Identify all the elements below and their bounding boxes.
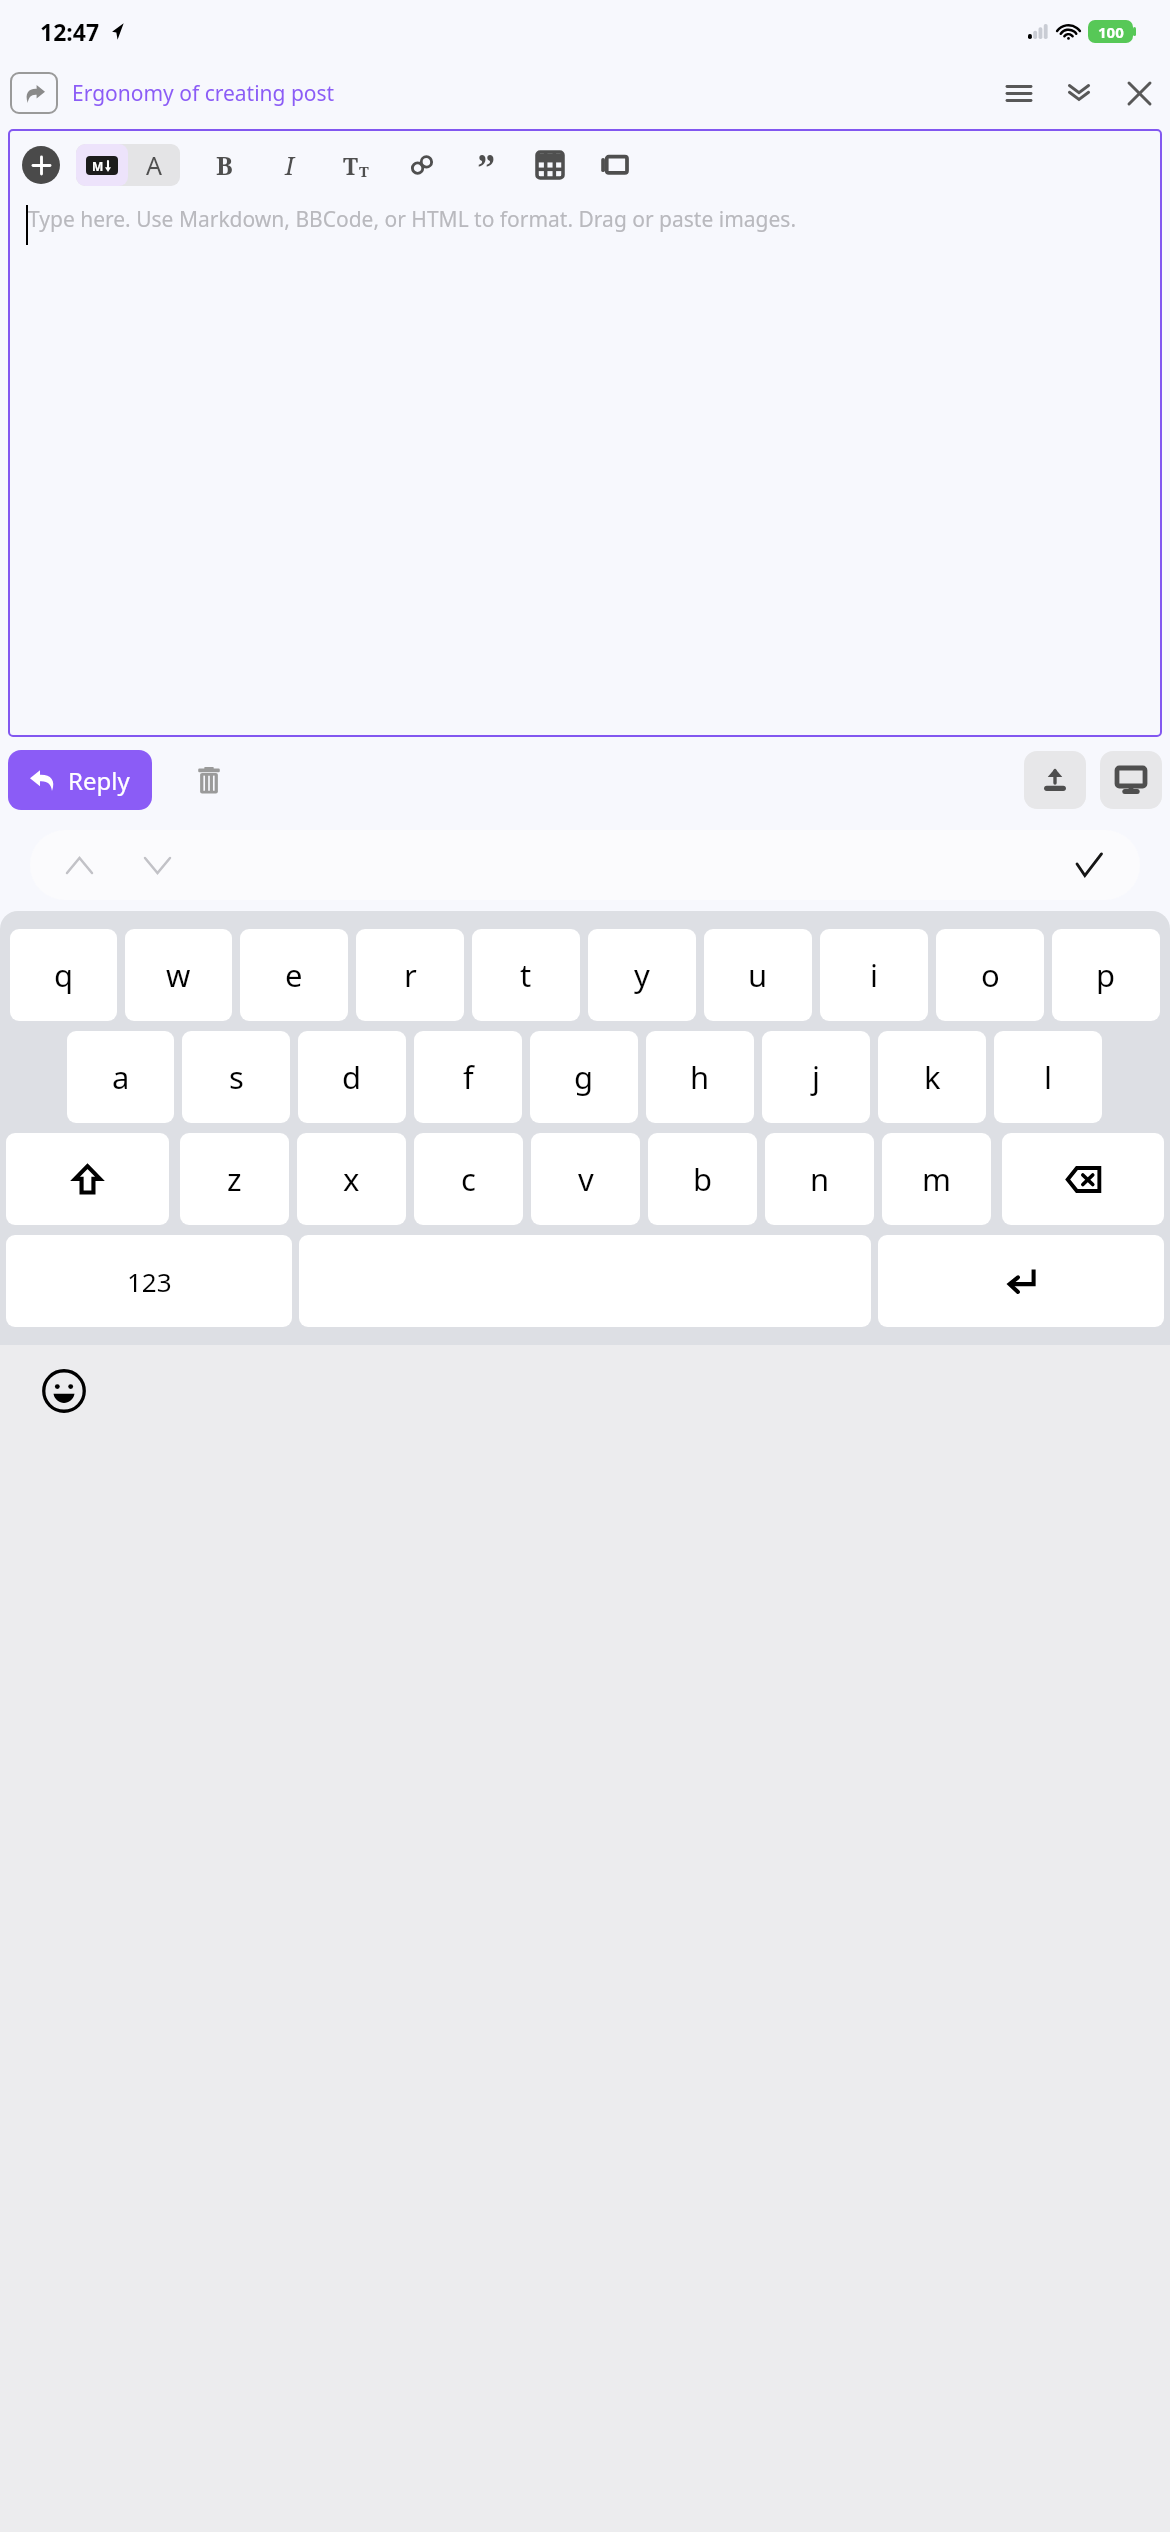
staticText: x bbox=[343, 1158, 360, 1200]
button[interactable]: Rich text bbox=[128, 144, 180, 186]
button[interactable]: j bbox=[762, 1031, 870, 1123]
button[interactable]: Return bbox=[878, 1235, 1164, 1327]
staticText: k bbox=[924, 1056, 941, 1098]
staticText: j bbox=[812, 1056, 820, 1098]
button[interactable]: Quote bbox=[466, 141, 506, 189]
staticText: 12:47 bbox=[40, 16, 100, 47]
staticText: u bbox=[748, 954, 768, 996]
staticText: d bbox=[342, 1056, 362, 1098]
button[interactable]: Collapse bbox=[1058, 72, 1100, 114]
button[interactable]: s bbox=[182, 1031, 290, 1123]
button[interactable]: a bbox=[67, 1031, 174, 1123]
button[interactable]: Close bbox=[1118, 72, 1160, 114]
staticText: o bbox=[981, 954, 1000, 996]
button[interactable]: Font size bbox=[336, 141, 376, 189]
staticText: v bbox=[578, 1158, 594, 1200]
button[interactable]: Add bbox=[22, 146, 60, 184]
button[interactable]: Upload bbox=[1024, 751, 1086, 809]
staticText: I bbox=[285, 148, 295, 182]
staticText: t bbox=[520, 954, 532, 996]
staticText: g bbox=[574, 1056, 594, 1098]
staticText: e bbox=[285, 954, 303, 996]
staticText: b bbox=[693, 1158, 713, 1200]
button[interactable]: Image bbox=[594, 141, 634, 189]
staticText: f bbox=[463, 1056, 474, 1098]
button[interactable]: y bbox=[588, 929, 696, 1021]
button[interactable]: Done bbox=[1064, 840, 1114, 890]
button[interactable]: Delete bbox=[184, 755, 234, 805]
staticText: Reply bbox=[68, 764, 130, 797]
button[interactable]: r bbox=[356, 929, 464, 1021]
button[interactable]: Ergonomy of creating post bbox=[72, 79, 998, 108]
button[interactable]: w bbox=[125, 929, 232, 1021]
button[interactable]: g bbox=[530, 1031, 638, 1123]
button[interactable]: v bbox=[531, 1133, 640, 1225]
staticText: l bbox=[1044, 1056, 1052, 1098]
button[interactable]: Bold bbox=[204, 141, 244, 189]
button[interactable]: h bbox=[646, 1031, 754, 1123]
staticText: m bbox=[922, 1158, 951, 1200]
staticText: n bbox=[810, 1158, 830, 1200]
staticText: A bbox=[146, 148, 162, 182]
staticText: y bbox=[634, 954, 650, 996]
button[interactable]: q bbox=[10, 929, 117, 1021]
button[interactable]: n bbox=[765, 1133, 874, 1225]
button[interactable]: Menu bbox=[998, 72, 1040, 114]
button[interactable]: Table bbox=[530, 141, 570, 189]
button[interactable]: Next bbox=[132, 840, 182, 890]
button[interactable]: e bbox=[240, 929, 348, 1021]
button[interactable]: Shift bbox=[6, 1133, 169, 1225]
button[interactable]: f bbox=[414, 1031, 522, 1123]
staticText: T bbox=[359, 161, 369, 181]
button[interactable]: Previous bbox=[54, 840, 104, 890]
button[interactable]: Preview bbox=[1100, 751, 1162, 809]
staticText: ” bbox=[477, 141, 496, 189]
staticText: T bbox=[343, 150, 359, 181]
button[interactable]: o bbox=[936, 929, 1044, 1021]
button[interactable]: Markdown bbox=[76, 144, 128, 186]
staticText: h bbox=[690, 1056, 710, 1098]
staticText: w bbox=[166, 954, 191, 996]
staticText: 123 bbox=[127, 1264, 172, 1299]
staticText: r bbox=[404, 954, 417, 996]
staticText: a bbox=[112, 1056, 130, 1098]
button[interactable]: Numbers bbox=[6, 1235, 292, 1327]
button[interactable]: p bbox=[1052, 929, 1160, 1021]
staticText: q bbox=[54, 954, 74, 996]
staticText: B bbox=[216, 148, 233, 182]
button[interactable]: Backspace bbox=[1002, 1133, 1164, 1225]
button[interactable]: Emoji bbox=[36, 1363, 92, 1419]
button[interactable]: u bbox=[704, 929, 812, 1021]
button[interactable]: b bbox=[648, 1133, 757, 1225]
button[interactable]: c bbox=[414, 1133, 523, 1225]
staticText: Ergonomy of creating post bbox=[72, 79, 335, 108]
button[interactable]: Reply bbox=[8, 750, 152, 810]
button[interactable]: m bbox=[882, 1133, 991, 1225]
button[interactable]: d bbox=[298, 1031, 406, 1123]
button[interactable]: i bbox=[820, 929, 928, 1021]
staticText: Type here. Use Markdown, BBCode, or HTML… bbox=[28, 205, 797, 234]
staticText: i bbox=[870, 954, 878, 996]
button[interactable]: k bbox=[878, 1031, 986, 1123]
button[interactable]: x bbox=[297, 1133, 406, 1225]
staticText: c bbox=[461, 1158, 476, 1200]
staticText: s bbox=[229, 1056, 244, 1098]
button[interactable]: l bbox=[994, 1031, 1102, 1123]
staticText: M bbox=[92, 158, 104, 174]
button[interactable]: z bbox=[180, 1133, 289, 1225]
button[interactable]: t bbox=[472, 929, 580, 1021]
button[interactable]: Link bbox=[402, 141, 442, 189]
button[interactable]: Share bbox=[10, 72, 58, 114]
staticText: 100 bbox=[1098, 22, 1124, 42]
staticText: p bbox=[1096, 954, 1116, 996]
staticText: z bbox=[227, 1158, 242, 1200]
button[interactable]: Italic bbox=[270, 141, 310, 189]
